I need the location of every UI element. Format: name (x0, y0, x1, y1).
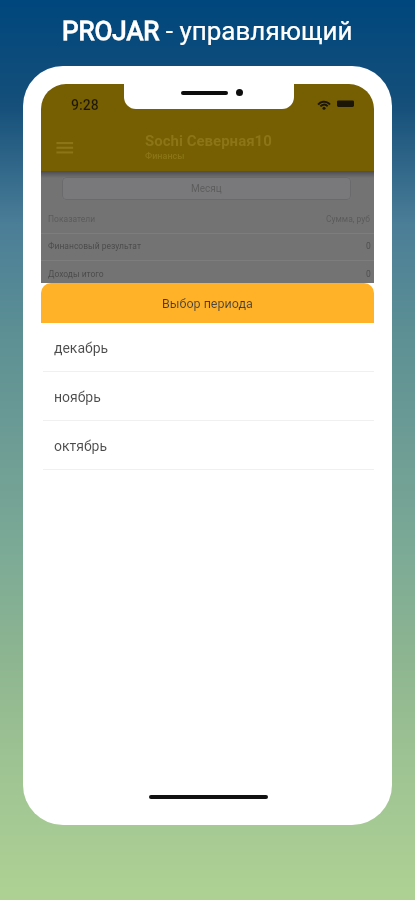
button[interactable]: ноябрь (41, 372, 374, 421)
button[interactable]: Выбор периода (41, 283, 374, 323)
staticText: 9:28 (71, 97, 99, 113)
staticText: Sochi Северная10 (145, 132, 272, 150)
staticText: Показатели (48, 214, 96, 224)
button[interactable]: декабрь (41, 323, 374, 372)
staticText: декабрь (54, 340, 109, 356)
staticText: 0 (366, 269, 371, 279)
staticText: октябрь (54, 438, 108, 454)
staticText: Финансовый результат (48, 241, 142, 251)
button[interactable]: октябрь (41, 421, 374, 470)
staticText: Выбор периода (162, 296, 253, 311)
staticText: PROJAR - управляющий (62, 16, 353, 46)
staticText: Доходы итого (48, 269, 104, 279)
staticText: ноябрь (54, 389, 101, 405)
staticText: Сумма, руб (326, 214, 371, 224)
staticText: Месяц (191, 183, 222, 195)
staticText: Финансы (145, 151, 185, 162)
button[interactable]: Open navigation menu (51, 136, 78, 163)
button[interactable]: Месяц (62, 177, 351, 200)
staticText: 0 (366, 241, 371, 251)
